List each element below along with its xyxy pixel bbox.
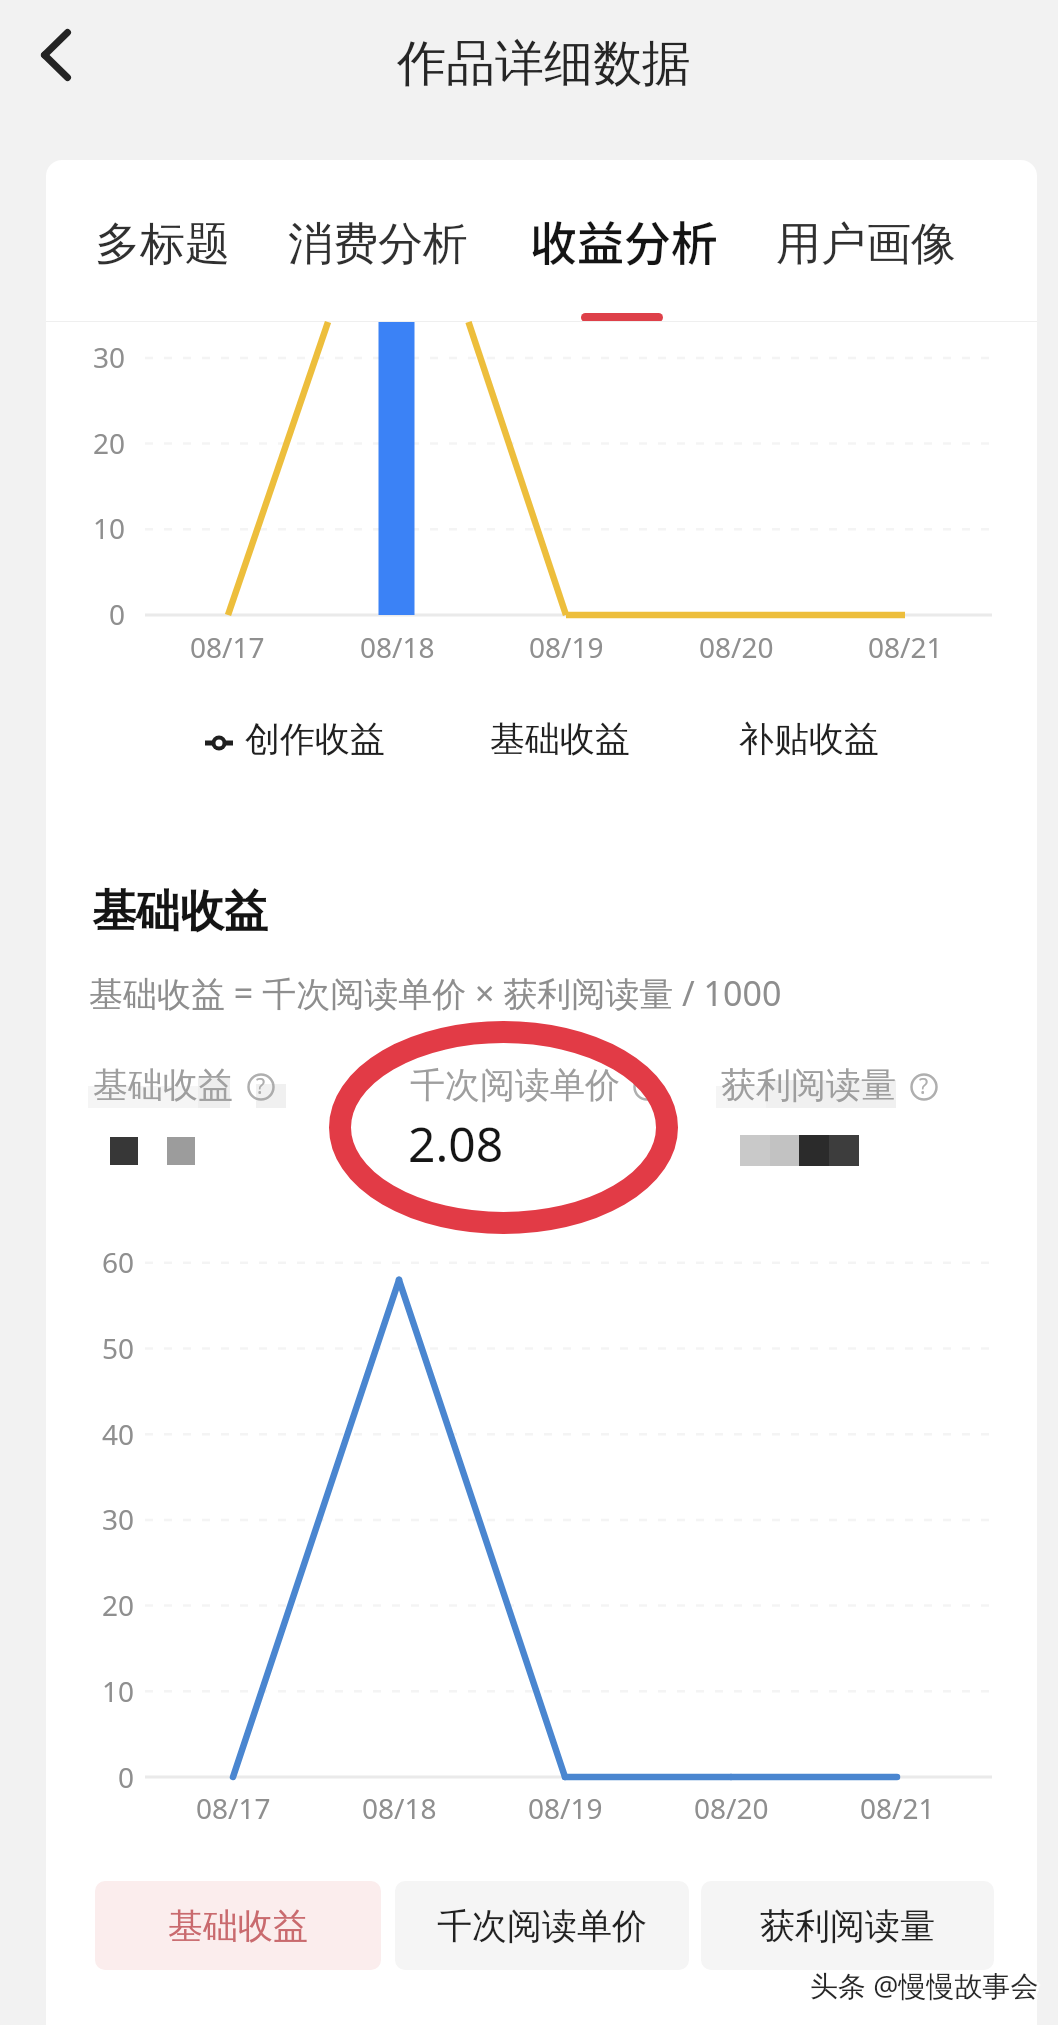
button[interactable]: Help bbox=[633, 1073, 661, 1101]
button[interactable]: Help bbox=[247, 1073, 275, 1101]
staticText: 头条 @慢慢故事会 bbox=[810, 1964, 1039, 2002]
staticText: ? bbox=[919, 1072, 929, 1100]
staticText: 08/19 bbox=[528, 1789, 603, 1827]
staticText: 10 bbox=[93, 509, 126, 547]
staticText: 头条 @慢慢故事会 bbox=[808, 1964, 1037, 2002]
staticText: 40 bbox=[102, 1415, 135, 1453]
staticText: 50 bbox=[102, 1329, 135, 1367]
staticText: 头条 @慢慢故事会 bbox=[810, 1966, 1039, 2004]
staticText: 60 bbox=[102, 1243, 135, 1281]
button[interactable]: 获利阅读量 bbox=[701, 1881, 994, 1970]
staticText: 08/20 bbox=[699, 628, 774, 666]
staticText: 20 bbox=[102, 1586, 135, 1624]
staticText: 30 bbox=[93, 338, 126, 376]
staticText: 08/21 bbox=[868, 628, 943, 666]
button[interactable]: Back bbox=[15, 14, 97, 96]
staticText: 作品详细数据 bbox=[397, 33, 691, 95]
staticText: 头条 @慢慢故事会 bbox=[808, 1966, 1037, 2004]
staticText: 基础收益 bbox=[93, 1063, 233, 1107]
staticText: 千次阅读单价 bbox=[410, 1063, 620, 1107]
staticText: 头条 @慢慢故事会 bbox=[810, 1969, 1039, 2007]
button[interactable]: 消费分析 bbox=[267, 200, 489, 288]
staticText: 创作收益 bbox=[245, 717, 385, 761]
button[interactable]: Help bbox=[910, 1073, 938, 1101]
staticText: 头条 @慢慢故事会 bbox=[812, 1968, 1041, 2006]
staticText: 08/20 bbox=[694, 1789, 769, 1827]
staticText: 30 bbox=[102, 1500, 135, 1538]
staticText: 基础收益 = 千次阅读单价 × 获利阅读量 / 1000 bbox=[89, 970, 782, 1016]
button[interactable]: 基础收益 bbox=[95, 1881, 381, 1970]
staticText: 10 bbox=[102, 1672, 135, 1710]
staticText: 头条 @慢慢故事会 bbox=[808, 1968, 1037, 2006]
button[interactable]: 收益分析 bbox=[511, 196, 737, 284]
staticText: 获利阅读量 bbox=[721, 1063, 896, 1107]
staticText: 2.08 bbox=[408, 1111, 504, 1176]
button[interactable]: 基础收益 bbox=[490, 710, 630, 766]
staticText: 08/18 bbox=[360, 628, 435, 666]
staticText: 08/19 bbox=[529, 628, 604, 666]
staticText: 0 bbox=[109, 595, 126, 633]
staticText: 基础收益 bbox=[92, 884, 268, 939]
staticText: 用户画像 bbox=[776, 216, 956, 273]
staticText: 08/21 bbox=[860, 1789, 935, 1827]
staticText: ? bbox=[256, 1072, 266, 1100]
staticText: 消费分析 bbox=[288, 216, 468, 273]
staticText: 多标题 bbox=[95, 216, 230, 273]
button[interactable]: 补贴收益 bbox=[739, 710, 879, 766]
staticText: 补贴收益 bbox=[739, 717, 879, 761]
staticText: 0 bbox=[118, 1758, 135, 1796]
button[interactable]: 千次阅读单价 bbox=[395, 1881, 689, 1970]
button[interactable]: 多标题 bbox=[76, 200, 249, 288]
staticText: 08/18 bbox=[362, 1789, 437, 1827]
staticText: ? bbox=[642, 1072, 652, 1100]
staticText: 收益分析 bbox=[530, 206, 718, 274]
staticText: 20 bbox=[93, 424, 126, 462]
staticText: 基础收益 bbox=[168, 1904, 308, 1948]
staticText: 08/17 bbox=[196, 1789, 271, 1827]
staticText: 获利阅读量 bbox=[760, 1904, 935, 1948]
staticText: 千次阅读单价 bbox=[437, 1904, 647, 1948]
staticText: 08/17 bbox=[190, 628, 265, 666]
button[interactable]: 创作收益 bbox=[200, 710, 390, 766]
staticText: 头条 @慢慢故事会 bbox=[813, 1966, 1042, 2004]
staticText: 基础收益 bbox=[490, 717, 630, 761]
button[interactable]: 用户画像 bbox=[755, 200, 977, 288]
staticText: 头条 @慢慢故事会 bbox=[812, 1964, 1041, 2002]
